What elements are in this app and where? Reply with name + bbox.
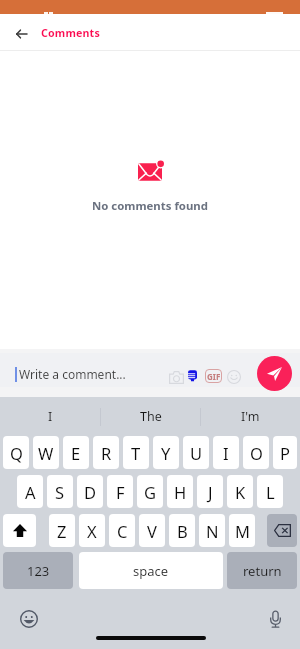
- staticText: U: [190, 442, 203, 464]
- button[interactable]: X: [79, 514, 105, 547]
- button[interactable]: O: [243, 436, 269, 469]
- staticText: T: [131, 442, 141, 464]
- button[interactable]: return: [227, 552, 297, 589]
- button[interactable]: R: [93, 436, 119, 469]
- button[interactable]: I: [0, 397, 100, 436]
- staticText: G: [144, 481, 157, 503]
- button[interactable]: K: [227, 475, 253, 508]
- staticText: Q: [10, 442, 23, 464]
- button[interactable]: Z: [49, 514, 75, 547]
- staticText: GIF: [207, 371, 221, 382]
- button[interactable]: T: [123, 436, 149, 469]
- button[interactable]: C: [109, 514, 135, 547]
- button[interactable]: E: [63, 436, 89, 469]
- button[interactable]: GIF: [205, 369, 222, 383]
- staticText: J: [208, 481, 213, 503]
- button[interactable]: Send: [257, 356, 292, 391]
- staticText: Comments: [41, 26, 100, 41]
- button[interactable]: A: [17, 475, 43, 508]
- button[interactable]: Y: [153, 436, 179, 469]
- staticText: space: [133, 562, 169, 580]
- button[interactable]: F: [107, 475, 133, 508]
- button[interactable]: Q: [3, 436, 29, 469]
- staticText: I: [223, 442, 229, 464]
- button[interactable]: D: [77, 475, 103, 508]
- button[interactable]: Sticker: [188, 369, 197, 382]
- button[interactable]: Emoji: [227, 370, 241, 384]
- button[interactable]: Emoji keyboard: [16, 606, 42, 632]
- button[interactable]: I'm: [201, 397, 300, 436]
- button[interactable]: Backspace: [267, 514, 297, 547]
- button[interactable]: Back: [7, 20, 35, 48]
- staticText: O: [250, 442, 263, 464]
- button[interactable]: B: [169, 514, 195, 547]
- staticText: I: [48, 408, 53, 425]
- button[interactable]: N: [199, 514, 225, 547]
- button[interactable]: Dictation: [262, 606, 288, 632]
- staticText: N: [206, 520, 219, 542]
- button[interactable]: space: [79, 552, 223, 589]
- button[interactable]: L: [257, 475, 283, 508]
- staticText: H: [174, 481, 187, 503]
- staticText: No comments found: [92, 198, 208, 214]
- button[interactable]: Camera: [169, 371, 184, 384]
- staticText: F: [116, 481, 125, 503]
- staticText: M: [235, 520, 250, 542]
- button[interactable]: U: [183, 436, 209, 469]
- staticText: P: [280, 442, 290, 464]
- staticText: R: [101, 442, 112, 464]
- staticText: S: [55, 481, 65, 503]
- staticText: K: [235, 481, 246, 503]
- button[interactable]: H: [167, 475, 193, 508]
- staticText: X: [87, 520, 97, 542]
- button[interactable]: I: [213, 436, 239, 469]
- staticText: V: [147, 520, 157, 542]
- staticText: C: [117, 520, 128, 542]
- button[interactable]: S: [47, 475, 73, 508]
- button[interactable]: G: [137, 475, 163, 508]
- button[interactable]: The: [101, 397, 200, 436]
- staticText: return: [243, 562, 282, 580]
- staticText: D: [84, 481, 97, 503]
- button[interactable]: Shift: [3, 514, 36, 547]
- button[interactable]: J: [197, 475, 223, 508]
- staticText: 123: [27, 562, 50, 580]
- staticText: B: [177, 520, 188, 542]
- staticText: E: [71, 442, 81, 464]
- button[interactable]: 123: [3, 552, 73, 589]
- staticText: Write a comment...: [19, 366, 126, 382]
- staticText: The: [140, 408, 162, 425]
- staticText: Y: [161, 442, 171, 464]
- button[interactable]: V: [139, 514, 165, 547]
- staticText: W: [38, 442, 54, 464]
- staticText: Z: [57, 520, 67, 542]
- button[interactable]: W: [33, 436, 59, 469]
- staticText: L: [266, 481, 275, 503]
- button[interactable]: M: [229, 514, 255, 547]
- staticText: A: [25, 481, 36, 503]
- staticText: I'm: [241, 408, 260, 425]
- button[interactable]: P: [273, 436, 297, 469]
